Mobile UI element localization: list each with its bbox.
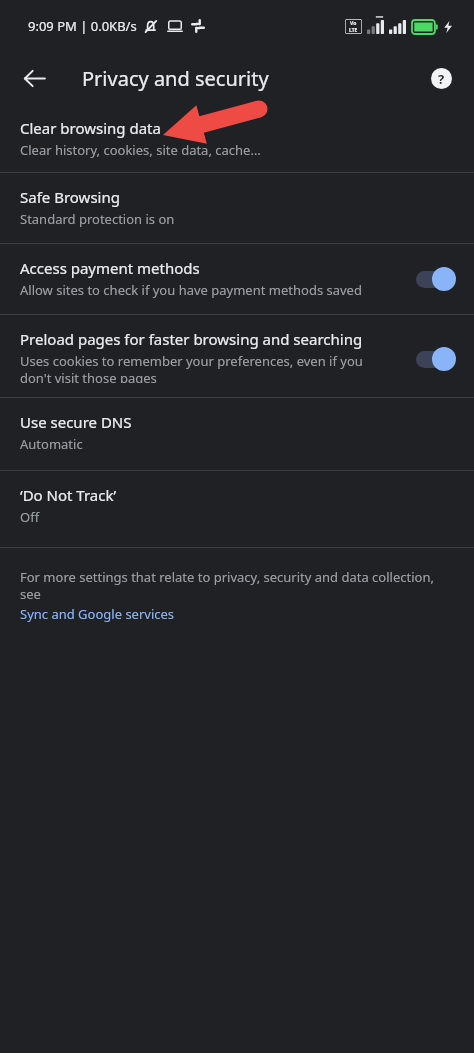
button[interactable]: Preload pages for faster browsing and se… bbox=[0, 315, 474, 397]
staticText: Vo bbox=[350, 20, 357, 27]
button[interactable]: Toggle Access payment methods bbox=[412, 265, 458, 293]
staticText: Privacy and security bbox=[82, 65, 269, 92]
button[interactable]: Back bbox=[12, 56, 56, 100]
staticText: Standard protection is on bbox=[20, 210, 175, 228]
staticText: Clear history, cookies, site data, cache… bbox=[20, 141, 261, 158]
staticText: Off bbox=[20, 508, 40, 526]
staticText: LTE bbox=[349, 27, 358, 34]
staticText: Allow sites to check if you have payment… bbox=[20, 281, 362, 299]
staticText: Use secure DNS bbox=[20, 412, 132, 432]
button[interactable]: Access payment methods bbox=[0, 244, 474, 314]
button[interactable]: Use secure DNS bbox=[0, 398, 474, 470]
button[interactable]: Toggle Preload pages for faster browsing… bbox=[412, 345, 458, 373]
staticText: Preload pages for faster browsing and se… bbox=[20, 329, 363, 349]
staticText: Access payment methods bbox=[20, 258, 200, 278]
staticText: Automatic bbox=[20, 435, 83, 453]
staticText: Clear browsing data bbox=[20, 118, 161, 138]
staticText: Sync and Google services bbox=[20, 605, 175, 623]
staticText: ? bbox=[438, 70, 445, 88]
button[interactable]: ‘Do Not Track’ bbox=[0, 471, 474, 547]
staticText: 9:09 PM | 0.0KB/s bbox=[28, 17, 137, 35]
staticText: Uses cookies to remember your preference… bbox=[20, 352, 388, 383]
button[interactable]: Help bbox=[420, 57, 462, 99]
button[interactable]: Safe Browsing bbox=[0, 173, 474, 243]
staticText: ‘Do Not Track’ bbox=[20, 485, 117, 505]
staticText: For more settings that relate to privacy… bbox=[20, 568, 456, 603]
button[interactable]: Clear browsing data bbox=[0, 104, 474, 172]
staticText: Safe Browsing bbox=[20, 187, 120, 207]
button[interactable]: Sync and Google services bbox=[20, 605, 175, 623]
